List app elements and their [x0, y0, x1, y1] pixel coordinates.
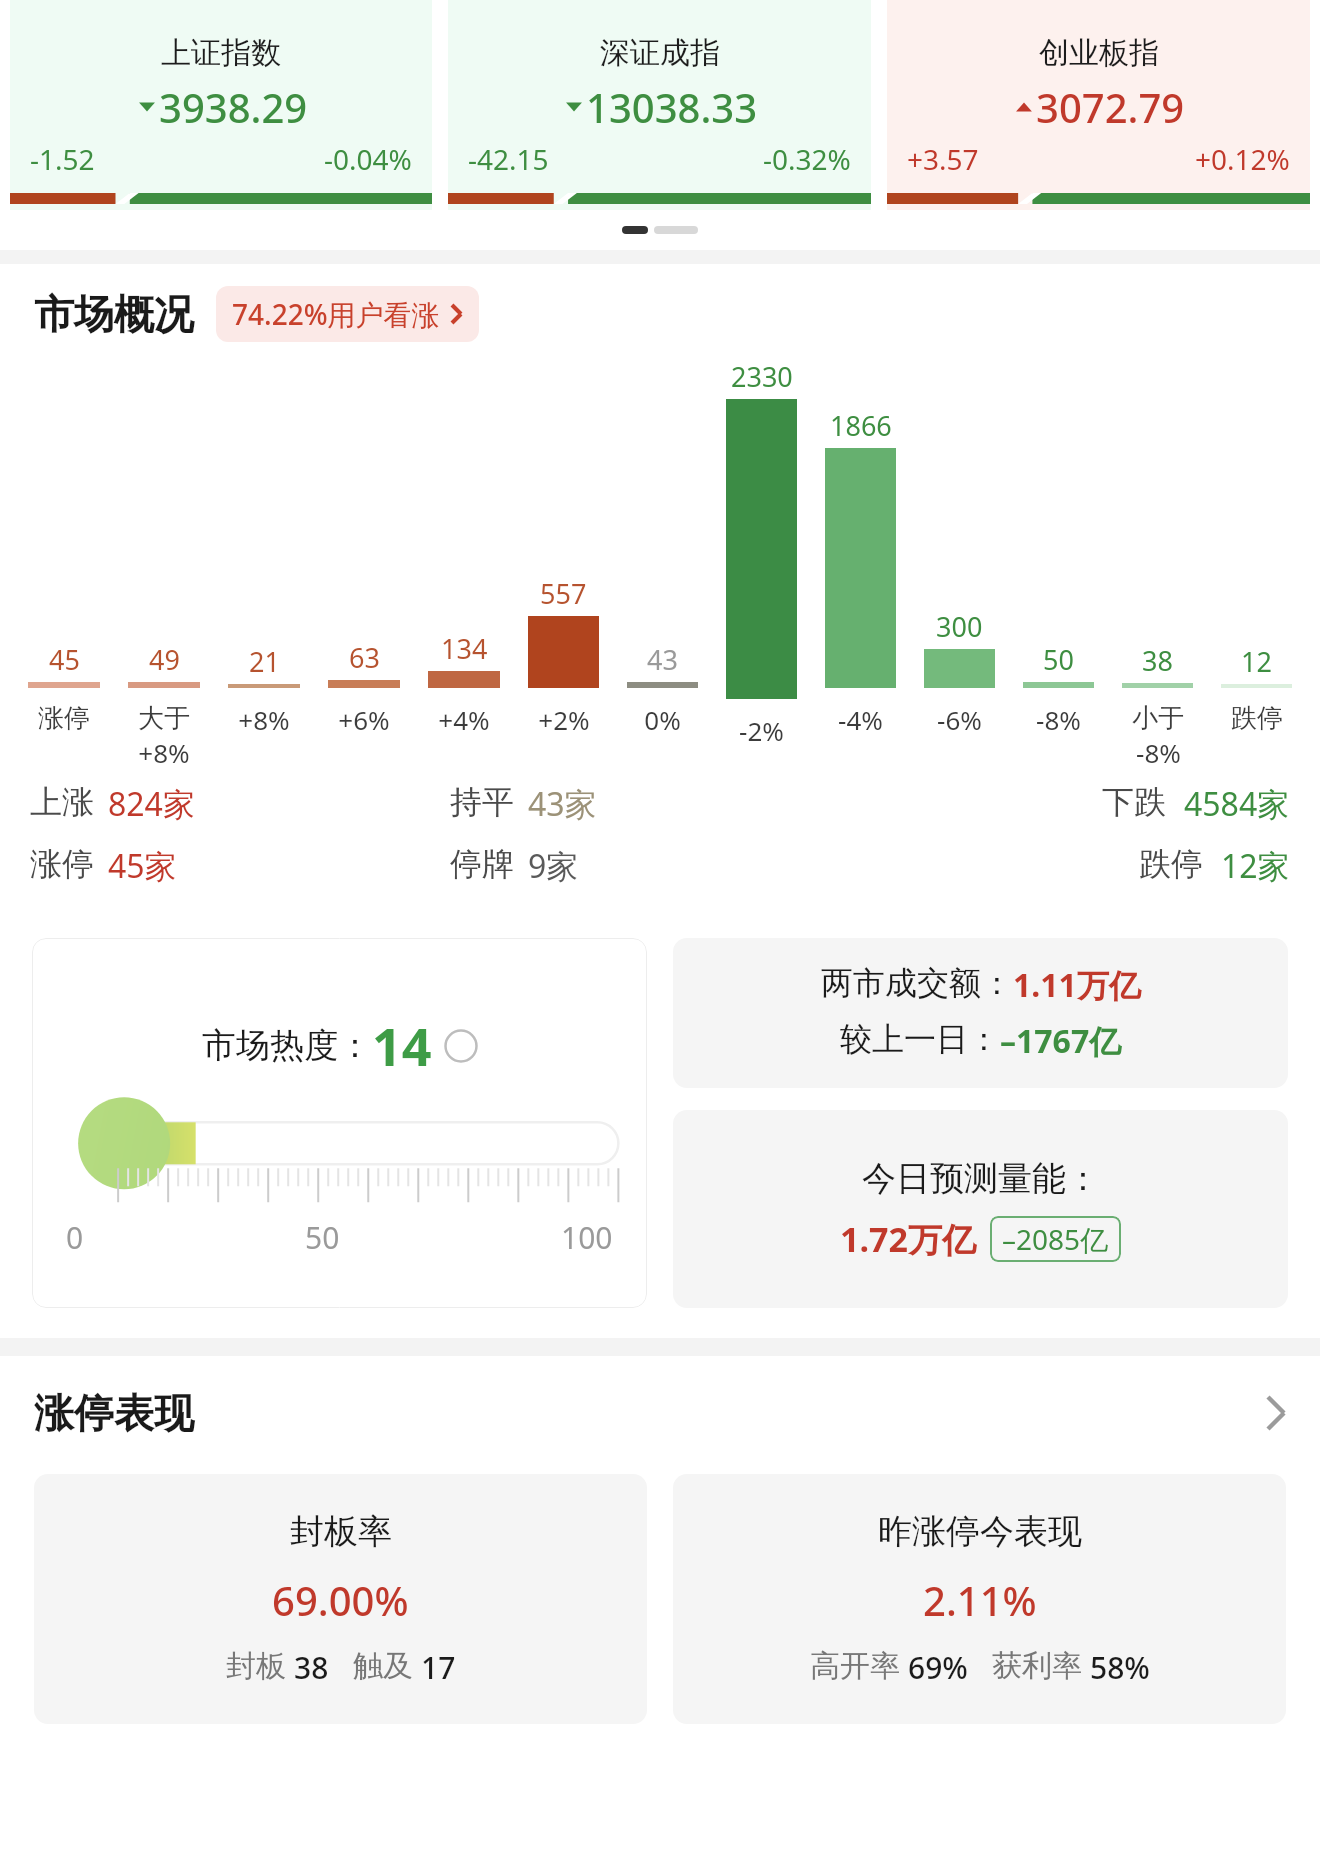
staticText: 2.11%	[923, 1573, 1037, 1627]
staticText: 3072.79	[1036, 80, 1185, 134]
button[interactable]: 涨停表现	[0, 1388, 1320, 1438]
staticText: 深证成指	[600, 34, 720, 72]
staticText: 封板	[226, 1647, 286, 1685]
staticText: 两市成交额：	[821, 963, 1013, 1003]
staticText: 涨停	[30, 844, 94, 884]
staticText: 小于	[1132, 702, 1184, 735]
staticText: 13038.33	[586, 80, 758, 134]
staticText: 74.22%用户看涨	[232, 295, 440, 333]
staticText: -1.52	[30, 140, 95, 178]
staticText: 市场概况	[34, 289, 194, 339]
button[interactable]: 封板率	[34, 1474, 647, 1724]
staticText: 0	[66, 1217, 84, 1258]
staticText: 涨停	[38, 702, 90, 735]
staticText: 2330	[731, 358, 793, 395]
staticText: -8%	[1136, 735, 1181, 770]
staticText: +3.57	[907, 140, 979, 178]
staticText: 4584家	[1184, 782, 1290, 826]
staticText: 38	[1142, 642, 1173, 679]
other: 更多	[1266, 1395, 1286, 1431]
staticText: –1767亿	[1000, 1019, 1122, 1063]
staticText: 557	[540, 575, 587, 612]
staticText: 43	[647, 641, 678, 678]
button[interactable]: 今日预测量能：	[673, 1110, 1288, 1308]
staticText: 大于	[138, 702, 190, 735]
staticText: 134	[441, 630, 488, 667]
staticText: 49	[149, 641, 180, 678]
button[interactable]: 深证成指	[448, 0, 871, 210]
staticText: 获利率	[992, 1647, 1082, 1685]
button[interactable]: 创业板指	[887, 0, 1310, 210]
staticText: 824家	[108, 782, 195, 826]
staticText: 0%	[644, 702, 681, 737]
staticText: 创业板指	[1039, 34, 1159, 72]
button[interactable]: 市场热度：	[32, 938, 647, 1308]
staticText: 21	[249, 643, 280, 680]
staticText: 市场热度：	[202, 1024, 372, 1067]
staticText: 9家	[528, 844, 579, 888]
staticText: 50	[1043, 641, 1074, 678]
staticText: 12家	[1221, 844, 1290, 888]
staticText: +2%	[538, 702, 590, 737]
staticText: 1.11万亿	[1013, 963, 1141, 1007]
staticText: 45家	[108, 844, 177, 888]
staticText: 50	[305, 1217, 340, 1258]
staticText: 69.00%	[272, 1573, 409, 1627]
staticText: 下跌	[1102, 782, 1166, 822]
staticText: 58%	[1090, 1647, 1150, 1688]
staticText: 封板率	[290, 1510, 392, 1553]
staticText: 38	[294, 1647, 329, 1688]
staticText: 高开率	[810, 1647, 900, 1685]
staticText: 100	[561, 1217, 613, 1258]
staticText: 12	[1241, 643, 1272, 680]
staticText: -6%	[937, 702, 982, 737]
staticText: 上证指数	[161, 34, 281, 72]
staticText: +4%	[438, 702, 490, 737]
staticText: 69%	[908, 1647, 968, 1688]
staticText: 持平	[450, 782, 514, 822]
staticText: -2%	[739, 713, 784, 748]
staticText: +0.12%	[1195, 140, 1290, 178]
staticText: –2085亿	[1002, 1220, 1109, 1258]
staticText: 43家	[528, 782, 597, 826]
staticText: -8%	[1036, 702, 1081, 737]
other: 说明	[444, 1029, 478, 1063]
staticText: 涨停表现	[34, 1388, 194, 1438]
staticText: 3938.29	[159, 80, 308, 134]
staticText: 63	[349, 639, 380, 676]
staticText: 1866	[830, 407, 892, 444]
staticText: 1.72万亿	[840, 1216, 976, 1262]
staticText: 14	[372, 1010, 432, 1081]
staticText: -0.32%	[763, 140, 851, 178]
staticText: 300	[936, 608, 983, 645]
staticText: 今日预测量能：	[862, 1157, 1100, 1200]
staticText: -4%	[838, 702, 883, 737]
button[interactable]: 两市成交额：	[673, 938, 1288, 1088]
staticText: +8%	[138, 735, 190, 770]
button[interactable]: 74.22%用户看涨	[216, 286, 479, 342]
staticText: 昨涨停今表现	[878, 1510, 1082, 1553]
button[interactable]: 上证指数	[10, 0, 432, 210]
staticText: 触及	[353, 1647, 413, 1685]
staticText: 45	[49, 641, 80, 678]
staticText: -0.04%	[324, 140, 412, 178]
staticText: 17	[421, 1647, 456, 1688]
staticText: 上涨	[30, 782, 94, 822]
staticText: -42.15	[468, 140, 549, 178]
staticText: 跌停	[1231, 702, 1283, 735]
staticText: +8%	[238, 702, 290, 737]
staticText: 停牌	[450, 844, 514, 884]
button[interactable]: 昨涨停今表现	[673, 1474, 1286, 1724]
staticText: 跌停	[1139, 844, 1203, 884]
staticText: 较上一日：	[840, 1019, 1000, 1059]
staticText: +6%	[338, 702, 390, 737]
